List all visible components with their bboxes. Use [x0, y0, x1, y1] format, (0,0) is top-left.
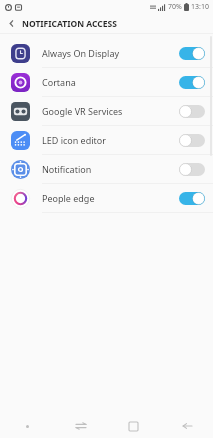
button[interactable]: People edge [0, 184, 213, 212]
button[interactable]: Switch [54, 414, 107, 438]
button[interactable]: Toggle off [179, 105, 205, 118]
button[interactable]: Notification [0, 155, 213, 183]
button[interactable]: Keyboard indicator [0, 414, 54, 438]
button[interactable]: Cortana [0, 68, 213, 96]
staticText: 70% [168, 2, 182, 12]
button[interactable]: LED icon editor [0, 126, 213, 154]
button[interactable]: Always On Display [0, 39, 213, 67]
staticText: LED icon editor [42, 134, 106, 146]
button[interactable]: Back [160, 414, 213, 438]
button[interactable]: Toggle on [179, 192, 205, 205]
button[interactable]: Toggle off [179, 134, 205, 147]
staticText: Notification [42, 163, 92, 175]
button[interactable]: Toggle on [179, 76, 205, 89]
staticText: 13:10 [191, 2, 209, 12]
button[interactable]: Google VR Services [0, 97, 213, 125]
button[interactable]: Toggle off [179, 163, 205, 176]
staticText: Cortana [42, 76, 76, 88]
button[interactable]: Back [0, 14, 22, 33]
staticText: NOTIFICATION ACCESS [22, 18, 117, 30]
staticText: Google VR Services [42, 105, 123, 117]
button[interactable]: Toggle on [179, 47, 205, 60]
staticText: People edge [42, 192, 95, 204]
button[interactable]: Recents [107, 414, 160, 438]
staticText: Always On Display [42, 47, 120, 59]
